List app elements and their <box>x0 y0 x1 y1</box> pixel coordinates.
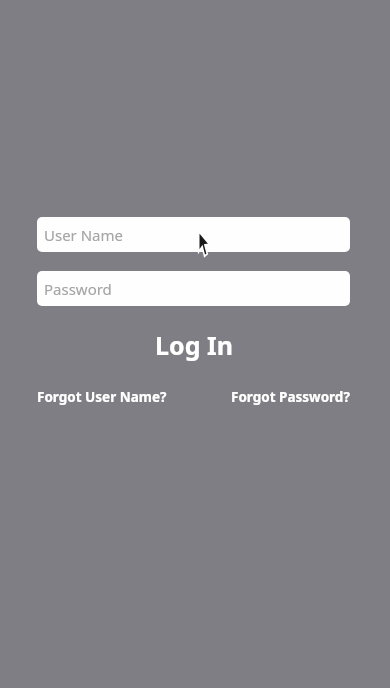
button[interactable]: User Name <box>37 217 350 252</box>
other: Pointer <box>198 231 212 257</box>
staticText: Log In <box>155 328 233 362</box>
staticText: Forgot Password? <box>231 388 350 406</box>
staticText: User Name <box>44 225 124 245</box>
button[interactable]: Forgot Password? <box>231 388 350 406</box>
button[interactable]: Forgot User Name? <box>37 388 167 406</box>
staticText: Password <box>44 279 112 299</box>
staticText: Forgot User Name? <box>37 388 167 406</box>
button[interactable]: Password <box>37 271 350 306</box>
button[interactable]: Log In <box>37 328 350 362</box>
